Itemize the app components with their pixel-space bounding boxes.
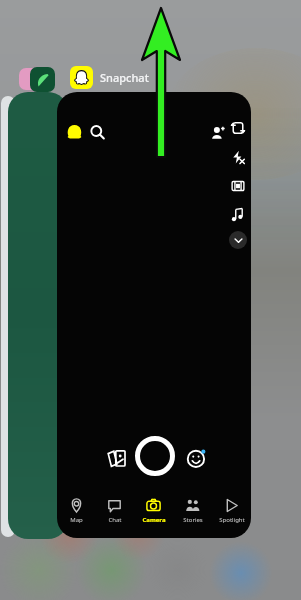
button[interactable]: Camera (134, 498, 173, 534)
button[interactable]: Notes app (30, 67, 55, 92)
staticText: Map (70, 516, 83, 524)
button[interactable]: Background app card (8, 92, 68, 539)
button[interactable]: Lenses (181, 443, 211, 473)
staticText: Chat (108, 516, 122, 524)
button[interactable]: Timer (226, 174, 250, 198)
button[interactable]: Spotlight (212, 498, 251, 534)
button[interactable]: Flip camera (226, 116, 250, 140)
button[interactable]: Profile (57, 92, 251, 538)
button[interactable]: Search (85, 120, 109, 144)
button[interactable]: Profile (62, 120, 86, 144)
button[interactable]: Add friends (205, 120, 229, 144)
button[interactable]: Stories (173, 498, 212, 534)
staticText: Snapchat (100, 70, 149, 85)
button[interactable]: Map (57, 498, 95, 534)
button[interactable]: More options (229, 231, 247, 249)
button[interactable]: App (19, 68, 41, 90)
button[interactable] (1, 96, 15, 537)
button[interactable]: Music (226, 203, 250, 227)
button[interactable]: Snapchat (70, 65, 149, 89)
staticText: Camera (142, 516, 166, 524)
button[interactable]: Chat (95, 498, 134, 534)
button[interactable]: Memories (102, 443, 132, 473)
staticText: Stories (183, 516, 203, 524)
button[interactable]: Capture (134, 435, 176, 477)
staticText: Spotlight (219, 516, 245, 524)
button[interactable]: Flash off (226, 145, 250, 169)
